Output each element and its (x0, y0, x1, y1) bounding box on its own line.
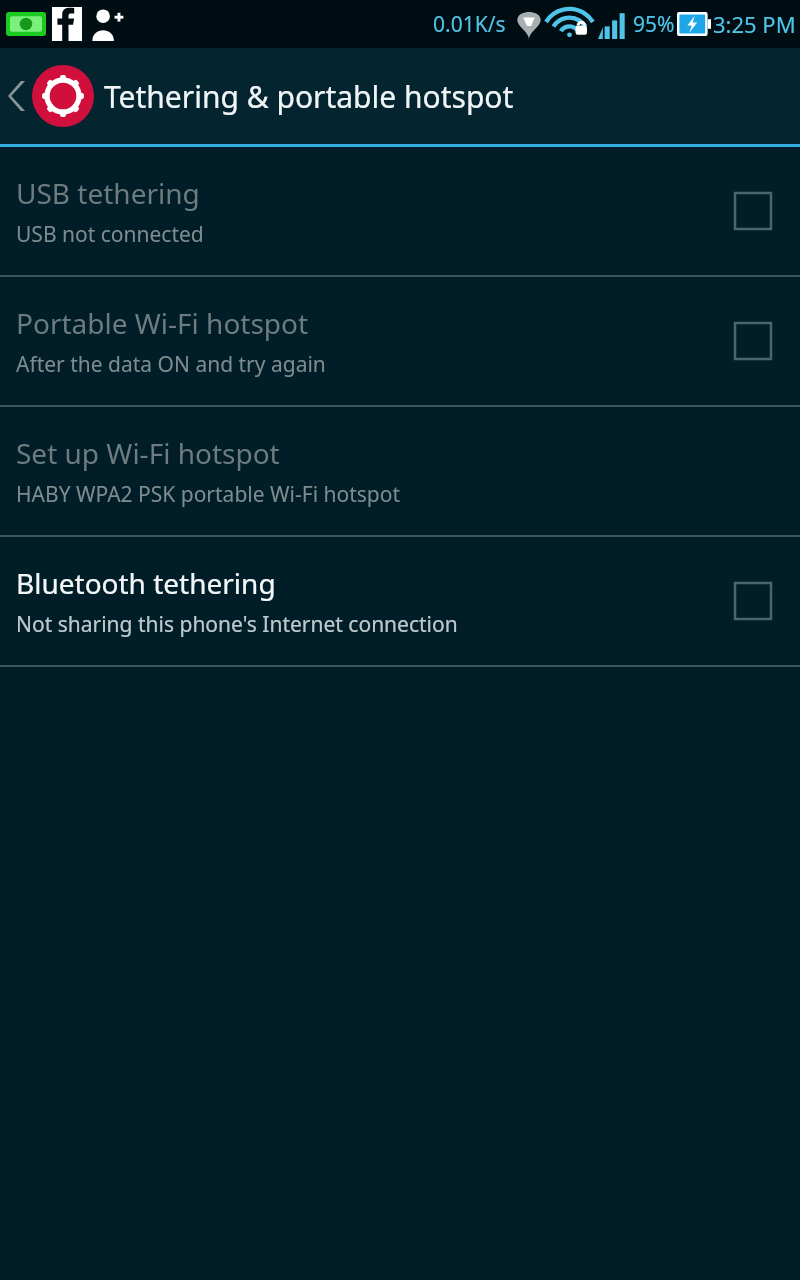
staticText: 3:25 PM (713, 9, 796, 39)
staticText: HABY WPA2 PSK portable Wi-Fi hotspot (16, 480, 401, 509)
button[interactable]: USB tethering (0, 147, 800, 275)
staticText: After the data ON and try again (16, 350, 326, 379)
staticText: Not sharing this phone's Internet connec… (16, 610, 458, 639)
button[interactable]: USB tethering (734, 192, 772, 230)
button[interactable]: Portable Wi-Fi hotspot (0, 277, 800, 405)
button[interactable]: Bluetooth tethering (0, 537, 800, 665)
button[interactable]: Portable Wi-Fi hotspot (734, 322, 772, 360)
staticText: Tethering & portable hotspot (104, 76, 514, 117)
staticText: Set up Wi-Fi hotspot (16, 434, 280, 472)
button[interactable]: Bluetooth tethering (734, 582, 772, 620)
staticText: Portable Wi-Fi hotspot (16, 304, 309, 342)
button[interactable]: Set up Wi-Fi hotspot (0, 407, 800, 535)
staticText: 95% (633, 10, 675, 39)
staticText: 0.01K/s (433, 10, 506, 39)
staticText: USB tethering (16, 174, 200, 212)
staticText: USB not connected (16, 220, 204, 249)
button[interactable]: Back (0, 48, 800, 144)
staticText: Bluetooth tethering (16, 564, 276, 602)
